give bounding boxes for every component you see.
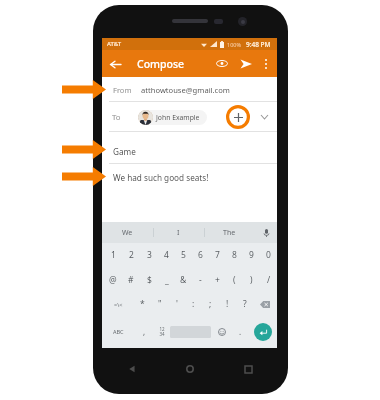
staticText: ' xyxy=(176,298,178,310)
staticText: 9:48 PM xyxy=(246,40,271,49)
button[interactable]: " xyxy=(151,292,168,316)
button[interactable]: We had such good seats! xyxy=(102,164,277,190)
staticText: We xyxy=(122,228,133,238)
button[interactable]: ' xyxy=(168,292,185,316)
staticText: $ xyxy=(147,274,152,286)
staticText: =\< xyxy=(114,301,123,308)
button[interactable]: * xyxy=(134,292,151,316)
staticText: ABC xyxy=(113,328,124,335)
staticText: ; xyxy=(209,298,212,310)
staticText: The xyxy=(223,228,236,238)
staticText: . xyxy=(239,326,242,337)
staticText: Compose xyxy=(137,57,185,71)
button[interactable]: @ xyxy=(104,267,122,292)
button[interactable]: 8 xyxy=(226,243,243,267)
staticText: * xyxy=(140,298,145,310)
staticText: & xyxy=(180,274,187,286)
button[interactable]: & xyxy=(175,267,192,292)
button[interactable]: ; xyxy=(202,292,219,316)
staticText: 8 xyxy=(232,249,237,261)
button[interactable]: Game xyxy=(102,138,277,164)
staticText: 100% xyxy=(227,41,242,48)
staticText: 7 xyxy=(215,249,220,261)
staticText: / xyxy=(267,274,271,286)
staticText: @ xyxy=(109,274,117,286)
button[interactable]: 9 xyxy=(243,243,260,267)
button[interactable]: 1 xyxy=(104,243,122,267)
button[interactable]: Back xyxy=(106,55,124,73)
button[interactable]: ABC xyxy=(102,316,135,347)
staticText: ? xyxy=(243,298,247,310)
button[interactable]: We xyxy=(102,222,153,243)
button[interactable]: Add recipient xyxy=(225,104,251,130)
staticText: ) xyxy=(250,274,253,286)
staticText: 4 xyxy=(164,249,169,261)
staticText: Game xyxy=(113,146,136,157)
button[interactable]: ? xyxy=(236,292,253,316)
button[interactable]: 5 xyxy=(175,243,192,267)
staticText: : xyxy=(192,298,195,310)
staticText: 3 xyxy=(147,249,152,261)
staticText: 9 xyxy=(249,249,254,261)
button[interactable]: $ xyxy=(140,267,158,292)
button[interactable]: . xyxy=(233,316,248,347)
button[interactable]: Enter xyxy=(254,323,272,341)
staticText: - xyxy=(199,274,202,286)
button[interactable]: / xyxy=(260,267,277,292)
staticText: ( xyxy=(233,274,236,286)
button[interactable]: 4 xyxy=(158,243,175,267)
button[interactable]: Send xyxy=(237,55,254,72)
staticText: atthowtouse@gmail.com xyxy=(141,85,230,95)
button[interactable]: 6 xyxy=(192,243,209,267)
staticText: 1 xyxy=(111,249,116,261)
button[interactable]: =\< xyxy=(102,292,134,316)
button[interactable]: To xyxy=(102,102,277,132)
button[interactable]: - xyxy=(192,267,209,292)
button[interactable]: Emoji xyxy=(211,316,233,347)
button[interactable]: # xyxy=(122,267,140,292)
button[interactable]: ) xyxy=(243,267,260,292)
staticText: ! xyxy=(226,298,229,310)
button[interactable]: Back xyxy=(102,356,161,382)
button[interactable]: 2 xyxy=(122,243,140,267)
button[interactable]: Attach xyxy=(213,55,230,72)
button[interactable]: 7 xyxy=(209,243,226,267)
staticText: 2 xyxy=(129,249,134,261)
staticText: We had such good seats! xyxy=(113,172,209,183)
staticText: " xyxy=(158,298,162,310)
staticText: 0 xyxy=(266,249,271,261)
button[interactable]: ( xyxy=(226,267,243,292)
button[interactable]: Recents xyxy=(219,356,277,382)
button[interactable]: : xyxy=(185,292,202,316)
button[interactable]: , xyxy=(135,316,153,347)
button[interactable]: Home xyxy=(161,356,219,382)
button[interactable]: ! xyxy=(219,292,236,316)
button[interactable]: I xyxy=(153,222,204,243)
staticText: John Example xyxy=(156,113,200,122)
staticText: From xyxy=(113,85,132,95)
button[interactable]: Voice input xyxy=(255,222,277,243)
staticText: 6 xyxy=(198,249,203,261)
staticText: 5 xyxy=(181,249,186,261)
button[interactable]: 12 34 xyxy=(153,316,170,347)
staticText: _ xyxy=(165,274,169,286)
staticText: I xyxy=(177,228,180,238)
button[interactable]: 3 xyxy=(140,243,158,267)
button[interactable]: From xyxy=(102,77,277,102)
button[interactable]: _ xyxy=(158,267,175,292)
staticText: # xyxy=(128,274,134,286)
staticText: , xyxy=(143,326,146,337)
button[interactable]: More options xyxy=(258,56,274,72)
staticText: AT&T xyxy=(107,40,122,48)
button[interactable]: + xyxy=(209,267,226,292)
staticText: 12 34 xyxy=(159,326,165,337)
button[interactable]: 0 xyxy=(260,243,277,267)
button[interactable]: Backspace xyxy=(253,292,277,316)
button[interactable]: Expand xyxy=(256,109,272,125)
staticText: + xyxy=(215,274,220,286)
staticText: To xyxy=(112,112,121,123)
button[interactable]: The xyxy=(204,222,255,243)
